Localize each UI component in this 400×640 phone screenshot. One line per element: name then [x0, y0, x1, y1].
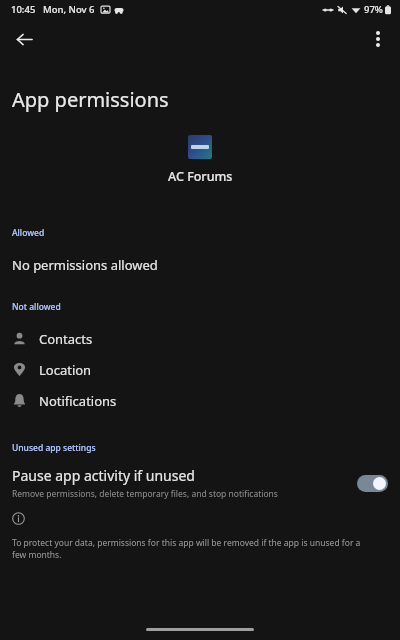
- staticText: 97%: [364, 3, 383, 16]
- button[interactable]: Location: [0, 354, 400, 385]
- staticText: Location: [39, 361, 92, 379]
- staticText: To protect your data, permissions for th…: [12, 537, 370, 561]
- staticText: No permissions allowed: [12, 256, 158, 274]
- button[interactable]: More options: [358, 19, 398, 59]
- staticText: Pause app activity if unused: [12, 466, 195, 485]
- button[interactable]: Notifications: [0, 385, 400, 416]
- staticText: AC Forums: [168, 168, 233, 185]
- staticText: Mon, Nov 6: [43, 3, 95, 16]
- staticText: Contacts: [39, 330, 93, 348]
- staticText: Allowed: [12, 227, 45, 239]
- button[interactable]: Back: [4, 19, 44, 59]
- staticText: Not allowed: [12, 301, 61, 313]
- staticText: Remove permissions, delete temporary fil…: [12, 488, 278, 500]
- staticText: 10:45: [11, 3, 36, 16]
- staticText: App permissions: [12, 86, 169, 113]
- button[interactable]: Pause app activity if unused toggle: [357, 475, 388, 492]
- button[interactable]: Contacts: [0, 323, 400, 354]
- button[interactable]: Pause app activity if unused: [0, 464, 400, 502]
- staticText: Notifications: [39, 392, 117, 410]
- staticText: Unused app settings: [12, 442, 96, 454]
